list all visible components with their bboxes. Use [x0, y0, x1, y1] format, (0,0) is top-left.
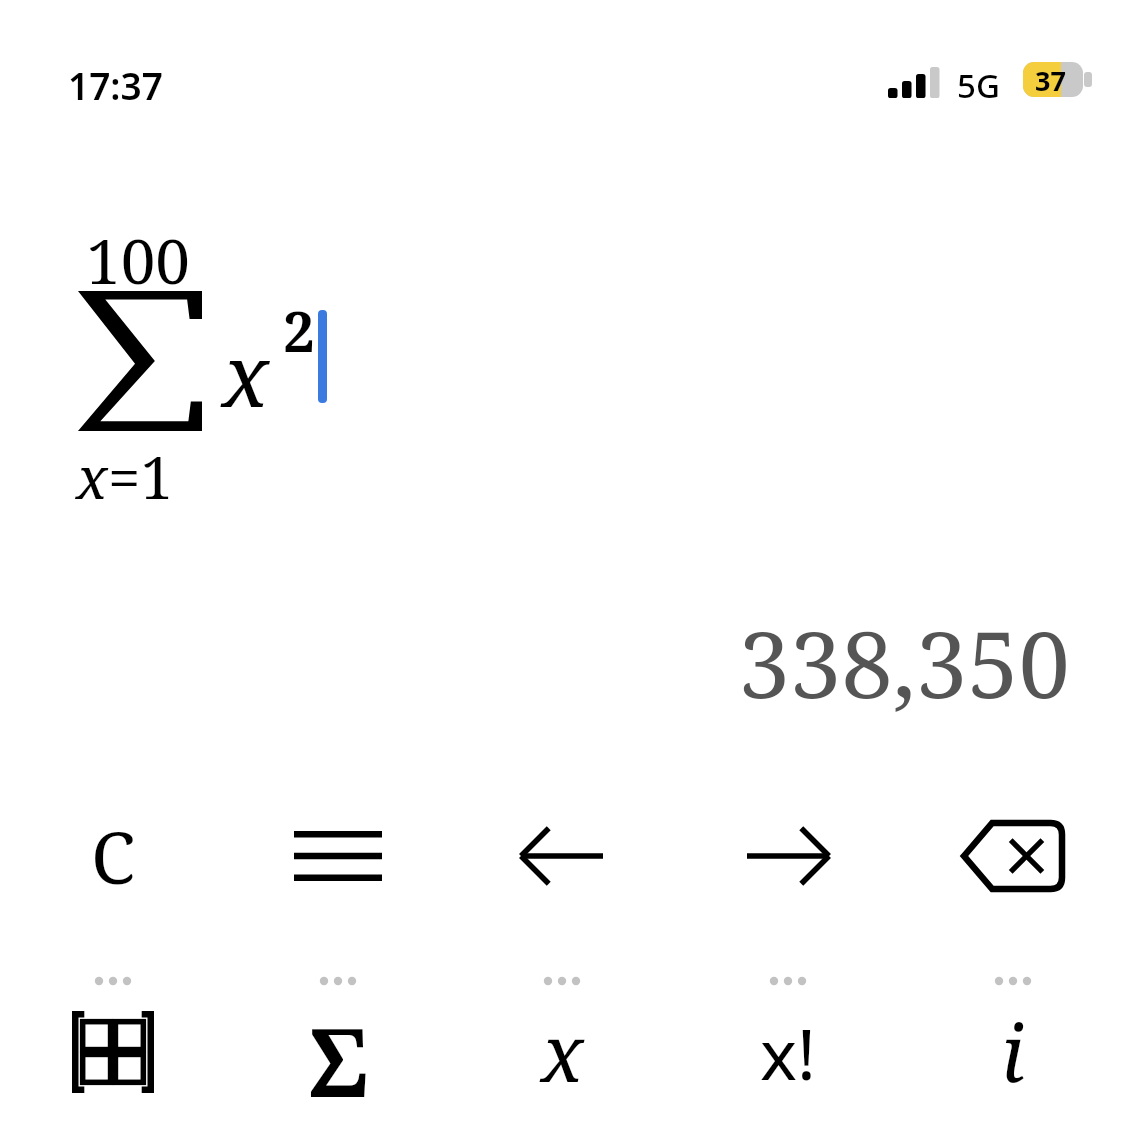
button[interactable]: Backspace: [913, 801, 1113, 911]
staticText: Σ: [307, 997, 370, 1107]
staticText: 100: [86, 218, 190, 302]
staticText: x!: [760, 1005, 816, 1100]
button[interactable]: Menu: [238, 801, 438, 911]
staticText: =1: [108, 437, 173, 516]
staticText: i: [1001, 999, 1025, 1105]
staticText: 17:37: [68, 60, 163, 110]
button[interactable]: Summation: [238, 997, 438, 1107]
staticText: x: [222, 315, 269, 432]
staticText: 37: [1035, 62, 1066, 97]
staticText: x: [541, 999, 584, 1105]
staticText: 5G: [957, 63, 1000, 108]
staticText: 2: [283, 292, 315, 368]
button[interactable]: Move cursor left: [462, 801, 662, 911]
staticText: C: [91, 807, 136, 905]
button[interactable]: Imaginary unit i: [913, 997, 1113, 1107]
button[interactable]: Factorial: [688, 997, 888, 1107]
button[interactable]: Move cursor right: [688, 801, 888, 911]
button[interactable]: Variable x: [462, 997, 662, 1107]
button[interactable]: Matrix: [13, 997, 213, 1107]
button[interactable]: Clear: [13, 801, 213, 911]
staticText: x: [76, 437, 108, 516]
staticText: 338,350: [0, 600, 1070, 725]
